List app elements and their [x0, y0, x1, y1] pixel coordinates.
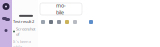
button[interactable]: Tool: [89, 20, 93, 24]
staticText: It's been a while: [13, 39, 31, 47]
staticText: Test result 2: [13, 19, 34, 24]
button[interactable]: Tool: [41, 20, 45, 24]
staticText: mobile: [56, 2, 66, 16]
button[interactable]: Tool: [73, 20, 77, 24]
button[interactable]: Tool: [49, 20, 53, 24]
staticText: Screenshot of: [16, 26, 35, 37]
button[interactable]: Tool: [65, 20, 69, 24]
button[interactable]: Links: [2, 16, 10, 22]
button[interactable]: More: [4, 29, 7, 32]
button[interactable]: Account: [2, 3, 9, 10]
button[interactable]: Tool: [57, 20, 61, 24]
